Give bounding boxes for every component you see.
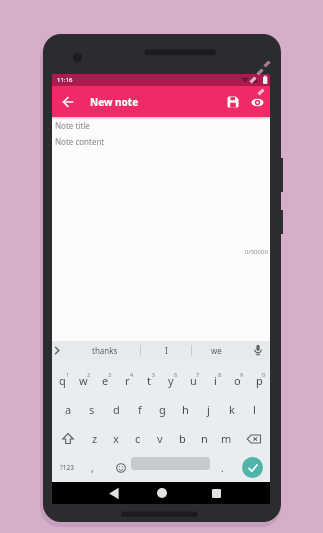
staticText: 5 (152, 371, 156, 378)
button[interactable]: j (197, 395, 220, 424)
staticText: 2 (87, 371, 91, 378)
staticText: we (211, 345, 222, 356)
staticText: f (138, 402, 142, 417)
button[interactable] (242, 457, 263, 478)
staticText: a (65, 402, 72, 417)
button[interactable] (153, 484, 171, 502)
button[interactable]: k (220, 395, 243, 424)
staticText: ?123 (60, 463, 74, 472)
staticText: 9 (240, 371, 244, 378)
button[interactable] (245, 90, 269, 114)
button[interactable]: a (56, 395, 80, 424)
staticText: 11:16 (57, 76, 73, 84)
staticText: s (89, 402, 95, 417)
staticText: n (201, 431, 208, 446)
staticText: 7 (196, 371, 200, 378)
button[interactable]: i (204, 366, 226, 395)
button[interactable]: p (248, 366, 270, 395)
button[interactable]: c (127, 424, 149, 453)
staticText: l (253, 402, 256, 417)
button[interactable]: o (226, 366, 248, 395)
staticText: 6 (174, 371, 178, 378)
button[interactable] (52, 424, 84, 453)
button[interactable]: Note title (55, 120, 90, 131)
button[interactable]: r (116, 366, 138, 395)
button[interactable]: f (128, 395, 151, 424)
staticText: b (179, 431, 186, 446)
staticText: 8 (218, 371, 222, 378)
button[interactable] (237, 424, 270, 453)
staticText: e (102, 373, 109, 388)
staticText: o (234, 373, 241, 388)
button[interactable] (110, 453, 132, 482)
button[interactable]: d (104, 395, 128, 424)
button[interactable]: . (212, 453, 233, 482)
button[interactable]: h (174, 395, 197, 424)
staticText: g (159, 402, 166, 417)
staticText: q (59, 373, 66, 388)
staticText: c (135, 431, 141, 446)
button[interactable]: , (82, 453, 103, 482)
staticText: t (147, 373, 151, 388)
button[interactable]: m (215, 424, 237, 453)
button[interactable] (105, 484, 123, 502)
button[interactable]: e (94, 366, 116, 395)
staticText: y (168, 373, 174, 388)
button[interactable]: y (160, 366, 182, 395)
button[interactable]: g (151, 395, 174, 424)
staticText: j (207, 402, 210, 417)
button[interactable]: l (243, 395, 266, 424)
staticText: 4 (130, 371, 134, 378)
button[interactable]: thanks (70, 341, 140, 360)
button[interactable]: q (52, 366, 73, 395)
staticText: i (214, 373, 217, 388)
staticText: r (125, 373, 130, 388)
staticText: 1 (66, 371, 70, 378)
staticText: x (113, 431, 119, 446)
button[interactable]: x (105, 424, 127, 453)
button[interactable]: w (73, 366, 94, 395)
staticText: v (157, 431, 163, 446)
staticText: New note (90, 95, 139, 109)
staticText: 3 (108, 371, 112, 378)
button[interactable]: I (141, 341, 191, 360)
staticText: , (91, 461, 94, 475)
staticText: m (221, 431, 232, 446)
staticText: w (79, 373, 88, 388)
button[interactable] (251, 341, 265, 360)
staticText: u (190, 373, 197, 388)
button[interactable]: b (171, 424, 193, 453)
button[interactable]: Note content (55, 136, 105, 147)
button[interactable] (221, 90, 245, 114)
button[interactable]: n (193, 424, 215, 453)
staticText: thanks (92, 345, 118, 356)
button[interactable] (56, 90, 80, 114)
staticText: d (113, 402, 120, 417)
button[interactable]: v (149, 424, 171, 453)
button[interactable] (207, 484, 225, 502)
staticText: 0/50000 (245, 248, 268, 256)
button[interactable]: u (182, 366, 204, 395)
button[interactable]: t (138, 366, 160, 395)
staticText: p (256, 373, 263, 388)
staticText: h (182, 402, 189, 417)
staticText: I (165, 345, 168, 356)
button[interactable]: z (84, 424, 105, 453)
button[interactable]: ?123 (52, 453, 82, 482)
staticText: z (92, 431, 98, 446)
staticText: 0 (262, 371, 266, 378)
staticText: k (229, 402, 235, 417)
button[interactable]: s (80, 395, 104, 424)
staticText: . (221, 461, 224, 475)
button[interactable]: we (192, 341, 240, 360)
